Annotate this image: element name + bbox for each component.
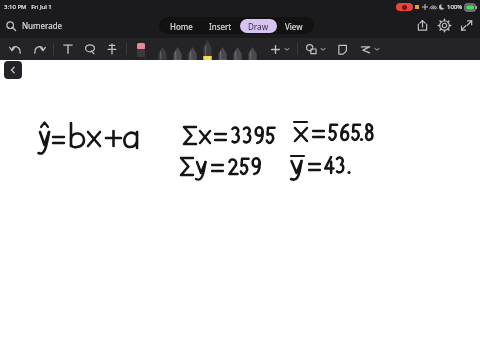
button[interactable]: Back — [4, 61, 22, 79]
button[interactable]: Settings — [438, 19, 451, 32]
button[interactable]: Collapse ribbon — [460, 19, 473, 32]
button[interactable]: Text — [61, 42, 75, 56]
staticText: 100% — [447, 3, 463, 11]
button[interactable]: Home — [162, 19, 201, 33]
button[interactable]: Teal pen — [215, 38, 230, 60]
button[interactable]: Sticky note — [336, 43, 349, 56]
button[interactable]: Lasso select — [83, 42, 97, 56]
button[interactable]: Undo — [9, 42, 23, 56]
button[interactable]: Eraser — [134, 38, 148, 60]
staticText: View — [285, 21, 303, 32]
staticText: Home — [170, 21, 193, 32]
button[interactable]: Ruler — [105, 42, 119, 56]
button[interactable]: Draw — [240, 19, 277, 33]
button[interactable]: View — [277, 19, 311, 33]
button[interactable]: Green pen — [170, 38, 185, 60]
staticText: Numerade — [22, 20, 63, 31]
staticText: 3:10 PM Fri Jul 1 — [4, 3, 52, 11]
button[interactable]: Share — [416, 19, 429, 32]
button[interactable]: Redo — [32, 42, 46, 56]
button[interactable]: Ink effects — [359, 38, 380, 60]
staticText: Insert — [209, 21, 232, 32]
staticText: Draw — [248, 21, 269, 32]
button[interactable]: Grey pen — [245, 38, 260, 60]
button[interactable]: Pink pen — [185, 38, 200, 60]
button[interactable]: Yellow highlighter — [200, 38, 215, 60]
button[interactable]: Insert — [201, 19, 240, 33]
button[interactable]: Blue pen — [230, 38, 245, 60]
button[interactable]: Numerade — [6, 20, 63, 31]
button[interactable]: Black pen — [155, 38, 170, 60]
button[interactable]: Add pen — [269, 38, 290, 60]
button[interactable]: Shapes — [305, 38, 326, 60]
